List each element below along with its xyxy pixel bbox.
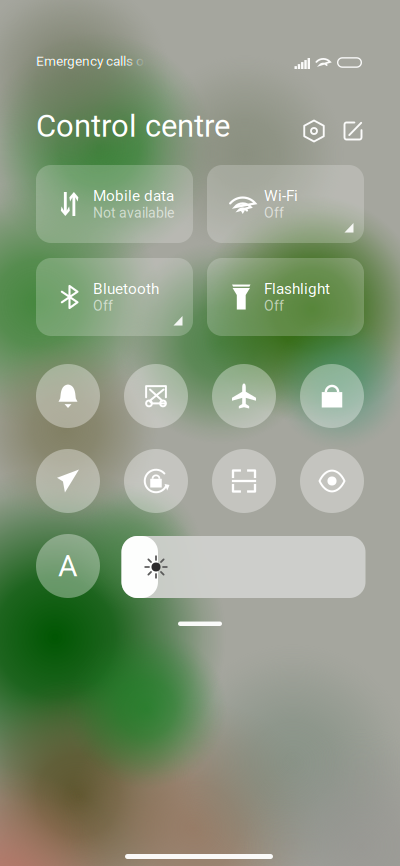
staticText: Off xyxy=(93,298,113,314)
button[interactable]: Silent xyxy=(0,0,64,64)
button[interactable]: Mobile data xyxy=(0,0,157,78)
staticText: Off xyxy=(264,205,284,221)
staticText: Bluetooth xyxy=(93,280,159,298)
button[interactable]: Settings xyxy=(0,0,28,28)
staticText: Flashlight xyxy=(264,280,330,298)
button[interactable]: Location xyxy=(0,0,64,64)
button[interactable]: Brightness xyxy=(0,0,244,62)
button[interactable]: Auto-rotate xyxy=(0,0,64,64)
staticText: Off xyxy=(264,298,284,314)
button[interactable]: Edit xyxy=(0,0,28,28)
button[interactable]: Lock screen xyxy=(0,0,64,64)
button[interactable]: Screenshot xyxy=(0,0,64,64)
staticText: Control centre xyxy=(36,108,230,144)
staticText: Mobile data xyxy=(93,187,174,205)
staticText: Wi-Fi xyxy=(264,187,298,205)
button[interactable]: Wi-Fi xyxy=(0,0,157,78)
button[interactable]: Aeroplane mode xyxy=(0,0,64,64)
staticText: Emergency calls only xyxy=(36,53,161,69)
staticText: A xyxy=(58,548,78,584)
button[interactable]: Auto brightness xyxy=(0,0,64,64)
button[interactable]: Flashlight xyxy=(0,0,157,78)
button[interactable]: Scanner xyxy=(0,0,64,64)
button[interactable]: Reading mode xyxy=(0,0,64,64)
button[interactable]: Bluetooth xyxy=(0,0,157,78)
staticText: Not available xyxy=(93,205,174,221)
